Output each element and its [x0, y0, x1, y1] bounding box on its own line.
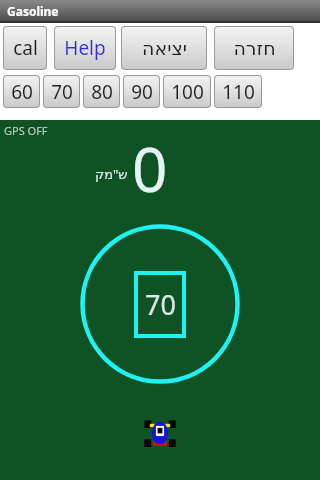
button[interactable]: 60 — [4, 76, 39, 107]
staticText: 90 — [131, 79, 153, 105]
button[interactable]: 110 — [215, 76, 261, 107]
button[interactable]: Speed dial — [80, 224, 240, 384]
staticText: 100 — [171, 79, 204, 105]
staticText: 110 — [222, 79, 255, 105]
button[interactable]: cal — [4, 27, 46, 69]
staticText: 70 — [51, 79, 73, 105]
staticText: יציאה — [142, 37, 187, 59]
button[interactable]: יציאה — [122, 27, 206, 69]
staticText: ש"מק — [95, 165, 128, 183]
button[interactable]: 70 — [44, 76, 79, 107]
staticText: cal — [13, 35, 38, 61]
button[interactable]: 90 — [124, 76, 159, 107]
button[interactable]: 100 — [164, 76, 210, 107]
staticText: 70 — [145, 286, 176, 323]
staticText: Gasoline — [7, 3, 59, 19]
staticText: Help — [64, 35, 106, 61]
button[interactable]: Car — [143, 417, 177, 451]
button[interactable]: Help — [55, 27, 115, 69]
staticText: חזרה — [233, 37, 276, 59]
button[interactable]: חזרה — [215, 27, 293, 69]
staticText: 80 — [91, 79, 113, 105]
staticText: 0 — [132, 126, 168, 210]
staticText: GPS OFF — [4, 123, 48, 138]
staticText: 60 — [11, 79, 33, 105]
button[interactable]: 80 — [84, 76, 119, 107]
